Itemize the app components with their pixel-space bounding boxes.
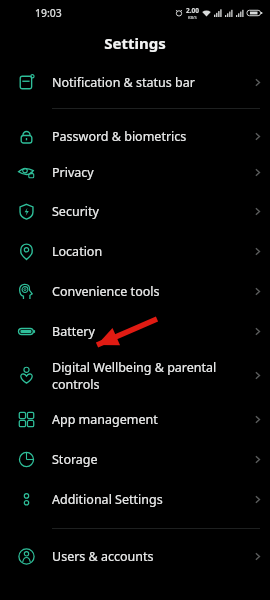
button[interactable]: Storage [0, 439, 270, 479]
button[interactable]: Users & accounts [0, 539, 270, 573]
staticText: Digital Wellbeing & parental controls [52, 359, 226, 392]
button[interactable]: Security [0, 191, 270, 231]
staticText: Privacy [52, 164, 226, 181]
button[interactable]: Battery [0, 311, 270, 351]
staticText: 19:03 [35, 6, 62, 20]
staticText: Additional Settings [52, 491, 226, 508]
staticText: Location [52, 243, 226, 260]
staticText: KB/S [188, 15, 197, 20]
staticText: Storage [52, 451, 226, 468]
button[interactable]: Privacy [0, 153, 270, 191]
staticText: Notification & status bar [52, 74, 226, 91]
button[interactable]: App management [0, 399, 270, 439]
staticText: Convenience tools [52, 283, 226, 300]
button[interactable]: Notification & status bar [0, 66, 270, 98]
button[interactable]: Password & biometrics [0, 119, 270, 153]
button[interactable]: Digital Wellbeing & parental controls [0, 351, 270, 399]
staticText: Settings [104, 33, 166, 53]
staticText: Battery [52, 323, 226, 340]
staticText: Password & biometrics [52, 128, 226, 145]
button[interactable]: Convenience tools [0, 271, 270, 311]
button[interactable]: Location [0, 231, 270, 271]
staticText: Security [52, 203, 226, 220]
staticText: Users & accounts [52, 548, 226, 565]
button[interactable]: Additional Settings [0, 479, 270, 519]
staticText: 2.00 [186, 6, 199, 15]
staticText: App management [52, 411, 226, 428]
